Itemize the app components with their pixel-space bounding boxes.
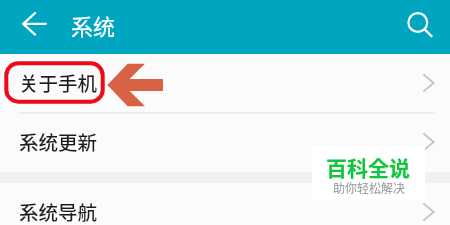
staticText: 系统 [71,9,116,41]
staticText: 百科全说 [326,152,410,182]
button[interactable]: 系统导航 [0,184,450,225]
staticText: 系统更新 [19,127,98,155]
staticText: 助你轻松解决 [333,179,406,196]
button[interactable]: Search [404,8,436,40]
button[interactable]: 系统更新 [0,114,450,172]
button[interactable]: Back [17,8,51,42]
staticText: 关于手机 [19,68,98,96]
staticText: 系统导航 [19,197,98,225]
button[interactable]: 关于手机 [0,55,450,113]
